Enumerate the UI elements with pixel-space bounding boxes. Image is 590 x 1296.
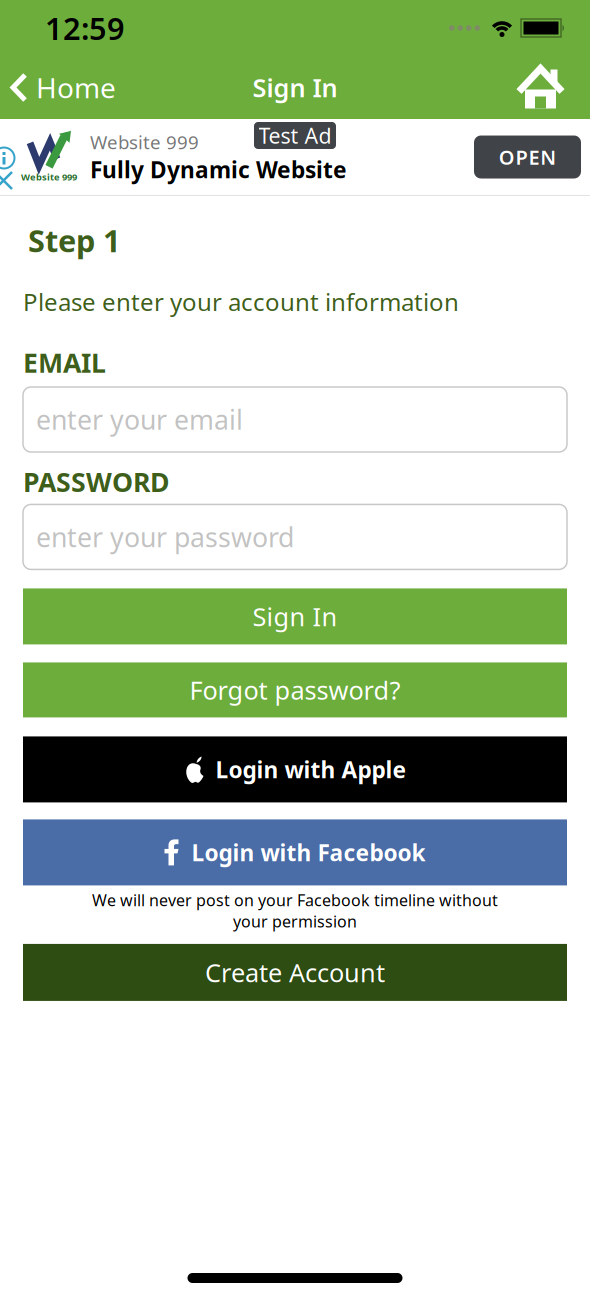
staticText: Please enter your account information bbox=[23, 286, 459, 318]
staticText: your permission bbox=[233, 911, 357, 932]
staticText: enter your password bbox=[36, 519, 294, 555]
staticText: enter your email bbox=[36, 402, 243, 437]
staticText: Login with Apple bbox=[215, 754, 406, 784]
staticText: OPEN bbox=[499, 144, 556, 170]
button[interactable]: Advertisement: Website 999 — Fully Dynam… bbox=[0, 119, 590, 195]
button[interactable]: Home bbox=[517, 65, 590, 109]
button[interactable]: Login with Facebook bbox=[23, 819, 567, 885]
button[interactable]: Create Account bbox=[23, 944, 567, 1001]
staticText: Step 1 bbox=[28, 220, 121, 261]
button[interactable]: Open ad bbox=[474, 135, 581, 178]
staticText: 12:59 bbox=[45, 8, 125, 48]
staticText: We will never post on your Facebook time… bbox=[92, 889, 498, 911]
staticText: EMAIL bbox=[23, 345, 106, 380]
button[interactable]: Forgot password? bbox=[23, 662, 567, 717]
button[interactable]: Login with Apple bbox=[23, 736, 567, 802]
staticText: Website 999 bbox=[21, 171, 77, 183]
staticText: Login with Facebook bbox=[191, 837, 425, 867]
staticText: Test Ad bbox=[258, 121, 331, 150]
staticText: Create Account bbox=[205, 956, 385, 989]
staticText: Home bbox=[36, 69, 116, 106]
staticText: Website 999 bbox=[90, 130, 199, 154]
staticText: Sign In bbox=[252, 71, 337, 104]
button[interactable]: enter your email bbox=[23, 387, 567, 452]
staticText: Fully Dynamic Website bbox=[90, 154, 347, 184]
button[interactable]: Sign In bbox=[23, 588, 567, 644]
button[interactable]: enter your password bbox=[23, 504, 567, 569]
button[interactable]: Back to Home bbox=[0, 69, 116, 106]
staticText: Forgot password? bbox=[189, 673, 400, 707]
staticText: Sign In bbox=[252, 600, 337, 633]
staticText: PASSWORD bbox=[23, 464, 170, 499]
